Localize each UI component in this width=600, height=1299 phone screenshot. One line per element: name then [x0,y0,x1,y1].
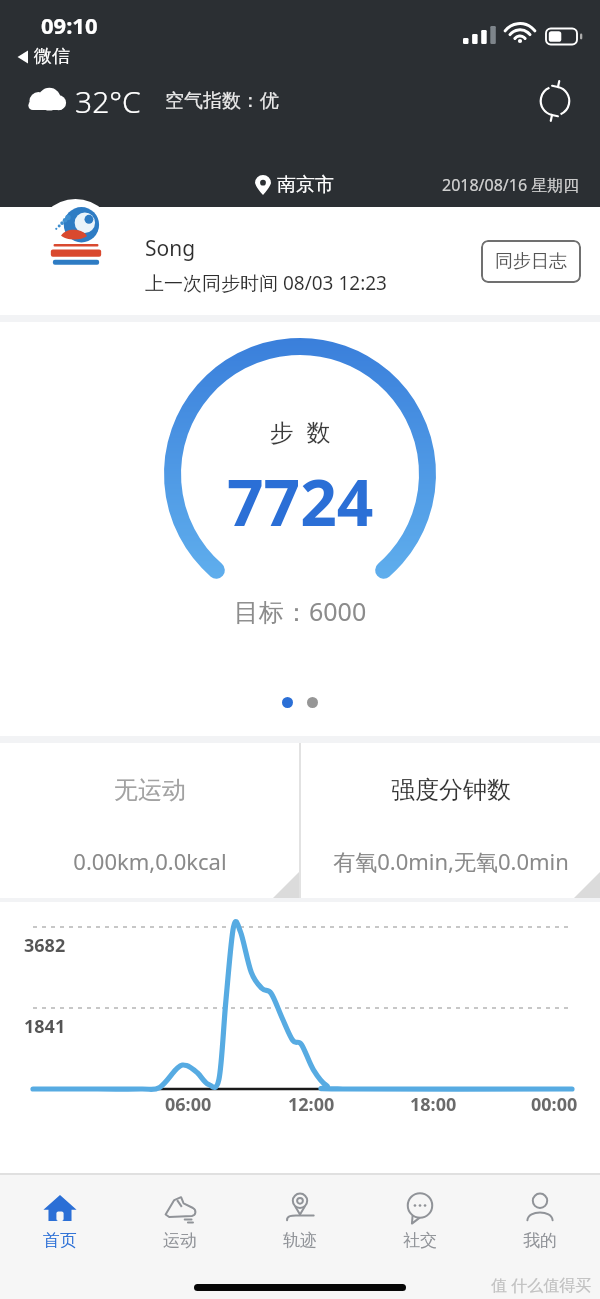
button[interactable]: 无运动 [0,743,299,898]
staticText: 步 数 [270,415,331,448]
staticText: 32°C [75,81,141,122]
staticText: 0.00km,0.0kcal [73,846,227,876]
staticText: 空气指数：优 [165,89,279,113]
staticText: 18:00 [410,1092,457,1117]
staticText: 轨迹 [283,1230,317,1251]
button[interactable]: 轨迹 [240,1175,360,1265]
staticText: 微信 [34,45,70,68]
button[interactable]: 微信 [12,42,75,71]
staticText: 09:10 [41,10,98,40]
staticText: 上一次同步时间 08/03 12:23 [145,270,387,296]
button[interactable]: 强度分钟数 [301,743,600,898]
staticText: 运动 [163,1230,197,1251]
button[interactable]: 运动 [120,1175,240,1265]
button[interactable]: Refresh [530,76,580,126]
button[interactable]: 社交 [360,1175,480,1265]
staticText: 同步日志 [495,250,567,273]
staticText: 目标：6000 [234,594,367,628]
staticText: 00:00 [531,1092,578,1117]
button[interactable] [307,697,318,708]
button[interactable]: Profile avatar [36,199,115,278]
staticText: 值 什么值得买 [491,1274,592,1296]
staticText: 我的 [523,1230,557,1251]
staticText: 社交 [403,1230,437,1251]
staticText: 无运动 [114,775,186,805]
button[interactable]: 我的 [480,1175,600,1265]
staticText: 7724 [227,458,374,545]
staticText: 有氧0.0min,无氧0.0min [333,846,569,876]
button[interactable] [282,697,293,708]
staticText: 12:00 [288,1092,335,1117]
staticText: 3682 [24,933,66,958]
staticText: 1841 [24,1014,66,1039]
staticText: 南京市 [277,173,334,197]
staticText: 2018/08/16 星期四 [442,174,580,196]
staticText: 强度分钟数 [391,775,511,805]
button[interactable]: 首页 [0,1175,120,1265]
staticText: 首页 [43,1230,77,1251]
staticText: Song [145,234,196,263]
staticText: 06:00 [165,1092,212,1117]
button[interactable]: 同步日志 [481,240,581,283]
